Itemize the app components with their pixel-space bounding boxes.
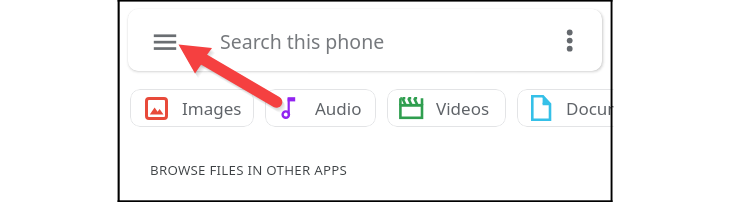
button[interactable]: Audio bbox=[265, 89, 376, 127]
button[interactable]: Videos bbox=[387, 89, 506, 127]
staticText: BROWSE FILES IN OTHER APPS bbox=[150, 161, 348, 179]
other: More options bbox=[556, 24, 586, 56]
button[interactable]: Images bbox=[130, 89, 254, 127]
button[interactable]: Open navigation drawer bbox=[128, 9, 602, 71]
other: Open navigation drawer bbox=[150, 29, 182, 55]
button[interactable]: Documents bbox=[517, 89, 647, 127]
staticText: Audio bbox=[315, 97, 362, 120]
staticText: Videos bbox=[436, 97, 490, 120]
staticText: Documents bbox=[566, 97, 647, 120]
staticText: Search this phone bbox=[220, 28, 385, 55]
staticText: Images bbox=[182, 97, 242, 120]
